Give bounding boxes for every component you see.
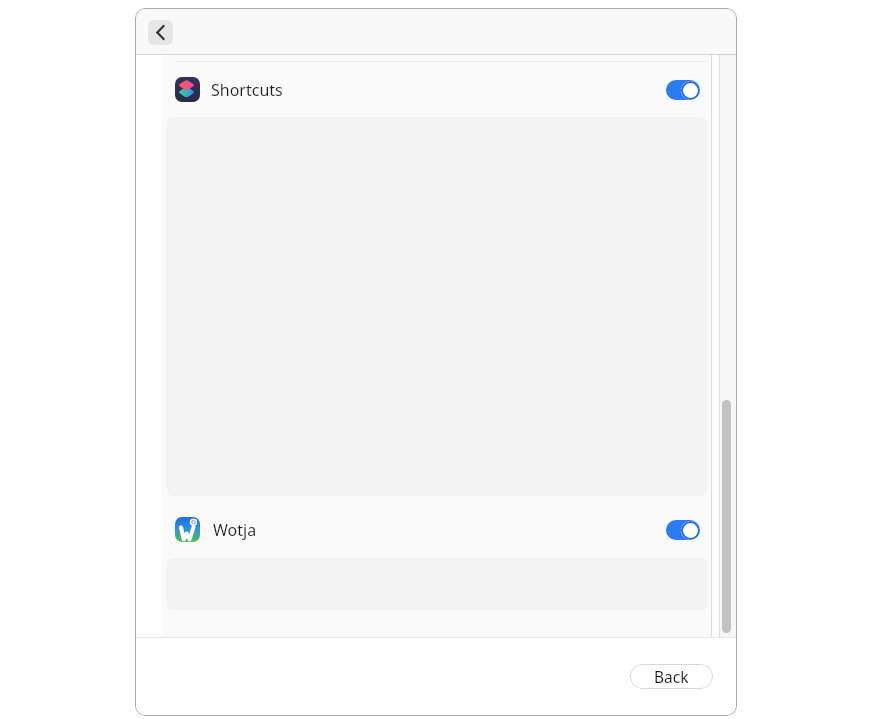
staticText: Back	[654, 666, 689, 687]
staticText: Wotja	[213, 519, 257, 541]
button[interactable]	[666, 520, 700, 540]
button[interactable]	[148, 20, 173, 45]
staticText: Shortcuts	[211, 79, 283, 101]
button[interactable]	[666, 80, 700, 100]
button[interactable]: Back	[630, 664, 713, 689]
